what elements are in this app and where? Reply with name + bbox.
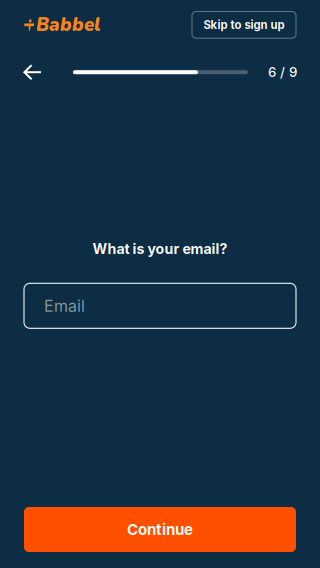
button[interactable]: Back <box>23 60 42 84</box>
button[interactable]: Email <box>24 283 296 328</box>
staticText: Skip to sign up <box>203 18 284 32</box>
button[interactable]: Continue <box>24 507 296 552</box>
staticText: What is your email? <box>92 240 227 257</box>
staticText: Babbel <box>36 12 100 38</box>
button[interactable]: Skip to sign up <box>192 11 296 38</box>
staticText: Email <box>44 296 85 315</box>
staticText: 6 / 9 <box>268 64 297 80</box>
staticText: Continue <box>127 520 193 539</box>
